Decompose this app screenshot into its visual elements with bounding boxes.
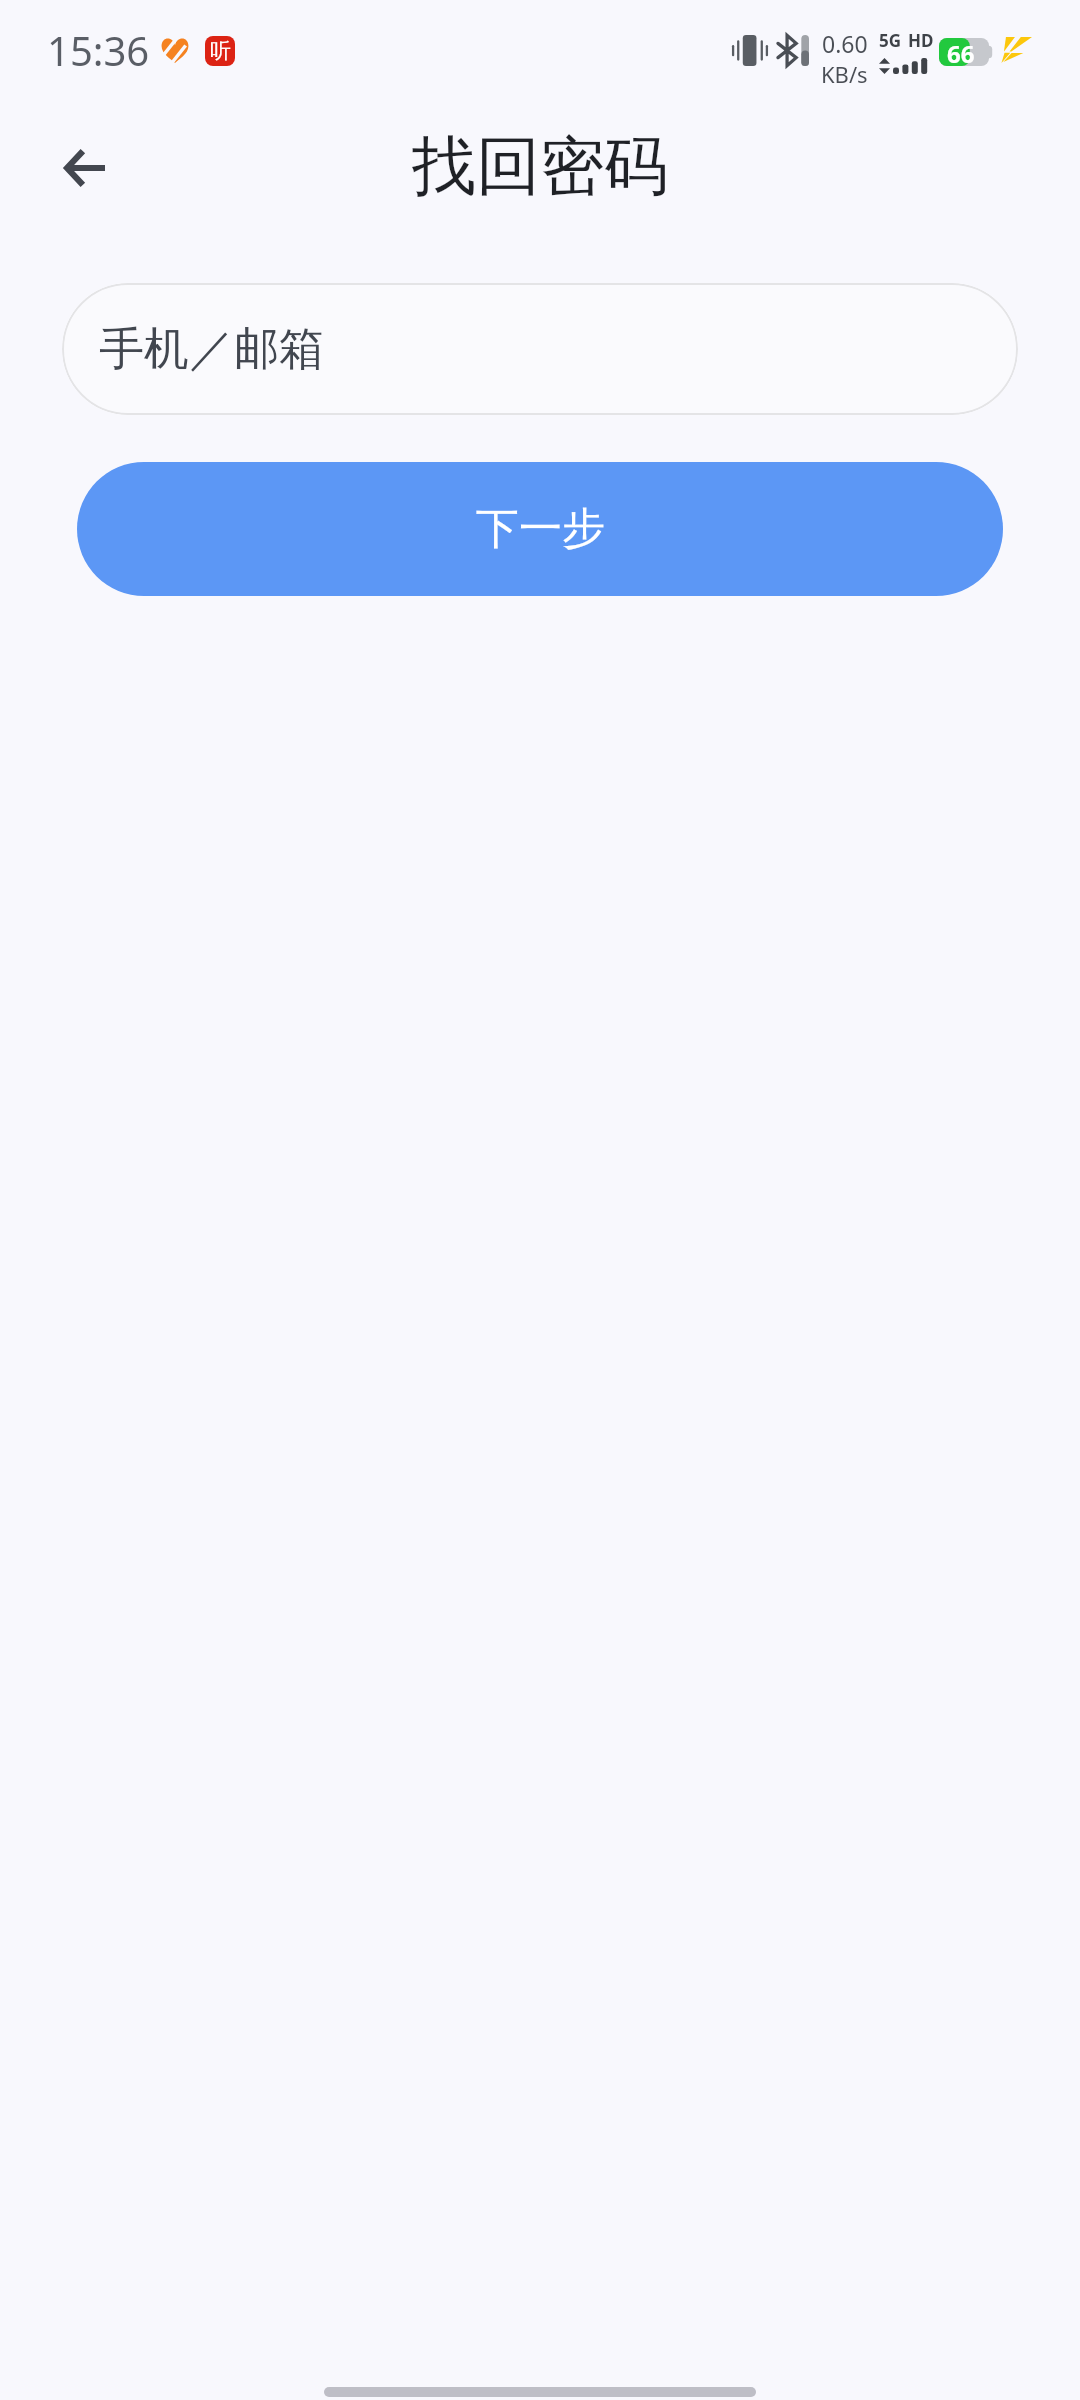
staticText: 手机／邮箱 [99,321,324,378]
staticText: KB/s [821,59,868,89]
staticText: 下一步 [476,502,605,556]
button[interactable]: 下一步 [77,462,1003,596]
staticText: 0.60 [822,28,868,59]
staticText: 听 [210,38,231,64]
staticText: 5G [879,29,902,52]
staticText: HD [908,29,934,52]
staticText: 找回密码 [412,126,668,207]
button[interactable]: 手机／邮箱 [62,283,1018,415]
button[interactable]: Back [42,126,126,210]
staticText: 15:36 [47,23,150,75]
staticText: 66 [947,37,975,65]
